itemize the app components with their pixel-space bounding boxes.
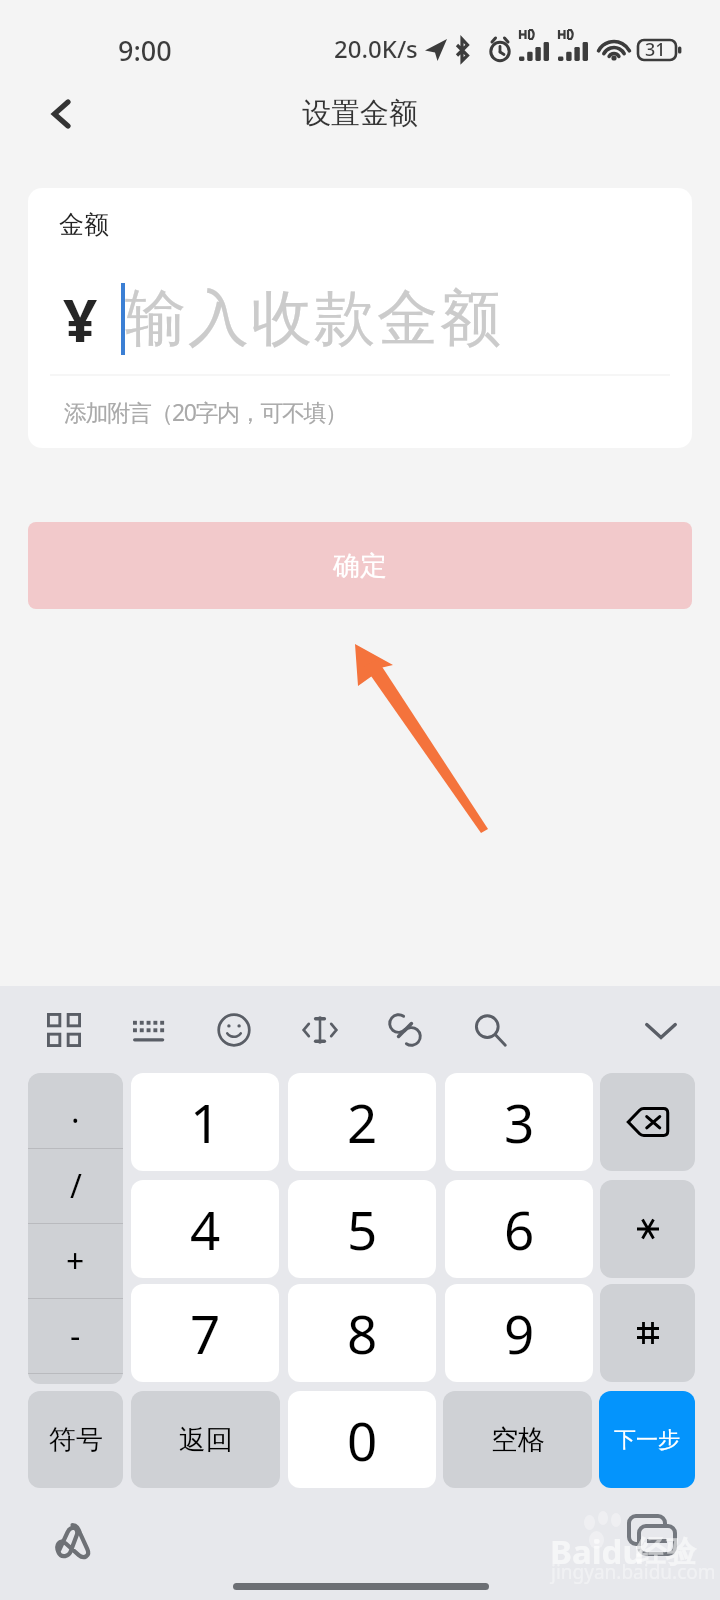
staticText: 8 [347,1297,378,1369]
button[interactable]: 3 [445,1073,593,1171]
button[interactable]: 5 [288,1180,436,1278]
staticText: 金额 [59,209,109,240]
button[interactable]: 7 [131,1284,279,1382]
staticText: + [66,1239,85,1283]
button[interactable]: - [28,1298,123,1373]
staticText: 3 [504,1086,535,1158]
staticText: Baidu [550,1529,644,1574]
button[interactable]: / [28,1148,123,1223]
button[interactable]: 6 [445,1180,593,1278]
staticText: 设置金额 [302,95,418,132]
button[interactable]: Back [24,78,96,150]
button[interactable]: 9 [445,1284,593,1382]
staticText: 31 [645,37,666,62]
button[interactable]: Keyboard [120,1000,180,1060]
button[interactable]: 2 [288,1073,436,1171]
staticText: 9 [504,1297,535,1369]
staticText: 符号 [49,1423,103,1457]
staticText: 0 [347,1404,378,1476]
staticText: / [70,1164,82,1208]
button[interactable]: 8 [288,1284,436,1382]
staticText: 输入收款金额 [124,280,502,357]
staticText: 4 [190,1193,221,1265]
staticText: 5 [347,1193,378,1265]
button[interactable]: 确定 [28,522,692,609]
button[interactable]: 返回 [131,1391,280,1488]
button[interactable]: 4 [131,1180,279,1278]
button[interactable]: 0 [288,1391,436,1488]
button[interactable]: Search [460,1000,520,1060]
button[interactable]: Star [600,1180,695,1278]
button[interactable]: Clipboard [375,1000,435,1060]
button[interactable]: 符号 [28,1391,123,1488]
staticText: 9:00 [118,32,172,69]
staticText: 下一步 [614,1426,680,1454]
staticText: ¥ [63,278,98,360]
button[interactable]: ¥ [50,258,670,372]
button[interactable]: 下一步 [599,1391,695,1488]
button[interactable]: Move cursor [290,1000,350,1060]
button[interactable]: Hide keyboard [631,1000,691,1060]
staticText: - [70,1314,81,1358]
button[interactable]: 空格 [443,1391,592,1488]
staticText: 经验 [636,1533,696,1571]
staticText: 6 [504,1193,535,1265]
button[interactable]: Input method settings [50,1518,94,1562]
staticText: 7 [190,1297,221,1369]
button[interactable]: 1 [131,1073,279,1171]
staticText: 2 [347,1086,378,1158]
staticText: 20.0K/s [334,32,418,65]
staticText: . [71,1089,80,1133]
staticText: 添加附言（20字内，可不填） [64,396,347,427]
button[interactable]: Emoji [204,1000,264,1060]
staticText: 确定 [333,549,387,583]
button[interactable]: . [28,1073,123,1148]
staticText: 返回 [179,1423,233,1457]
staticText: 1 [190,1086,221,1158]
staticText: 空格 [491,1423,545,1457]
button[interactable]: Pound [600,1284,695,1382]
button[interactable]: Layouts [34,1000,94,1060]
button[interactable]: 添加附言（20字内，可不填） [50,376,670,440]
staticText: jingyan.baidu.com [551,1559,716,1585]
button[interactable]: + [28,1223,123,1298]
button[interactable]: Backspace [600,1073,695,1171]
